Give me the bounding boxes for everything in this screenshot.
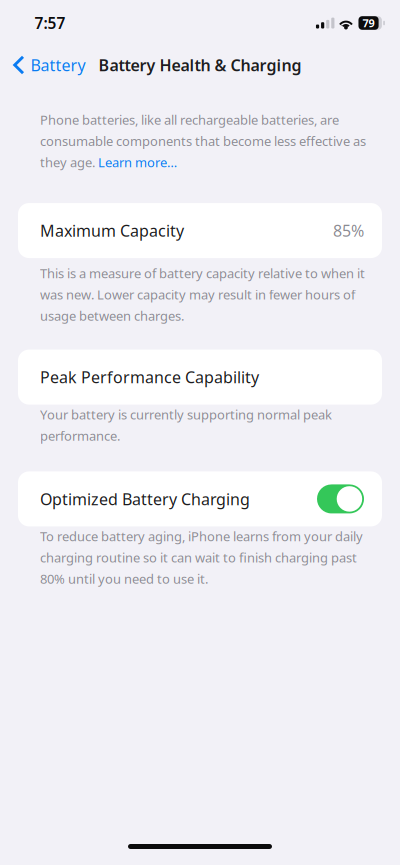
button[interactable]: Battery (11, 48, 88, 82)
staticText: 7:57 (34, 12, 65, 34)
staticText: Phone batteries, like all rechargeable b… (40, 111, 366, 171)
button[interactable]: Phone batteries, like all rechargeable b… (0, 111, 400, 171)
staticText: Maximum Capacity (40, 220, 184, 241)
staticText: Optimized Battery Charging (40, 488, 250, 510)
staticText: 79 (363, 16, 375, 30)
staticText: Battery Health & Charging (98, 54, 301, 76)
button[interactable]: Peak Performance Capability (0, 350, 400, 405)
staticText: Battery (31, 54, 86, 76)
staticText: To reduce battery aging, iPhone learns f… (40, 527, 363, 587)
staticText: 85% (333, 220, 364, 241)
button[interactable]: Optimized Battery Charging (317, 484, 364, 513)
staticText: Peak Performance Capability (40, 366, 259, 388)
staticText: Your battery is currently supporting nor… (40, 406, 332, 444)
staticText: This is a measure of battery capacity re… (40, 264, 365, 324)
